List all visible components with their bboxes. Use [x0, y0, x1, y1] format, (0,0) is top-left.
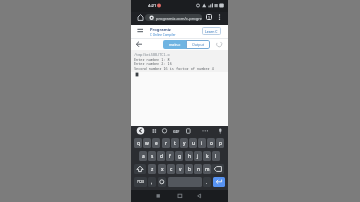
button[interactable] [173, 190, 188, 202]
staticText: Enter number 1: 8 [134, 57, 170, 62]
staticText: programiz.com/c-progra [156, 16, 202, 21]
staticText: . [206, 179, 208, 185]
staticText: x [161, 166, 164, 173]
button[interactable]: e [152, 138, 160, 148]
button[interactable]: Output [186, 40, 210, 49]
button[interactable]: l [212, 151, 220, 161]
staticText: Programiz [150, 27, 171, 33]
button[interactable]: s [148, 151, 156, 161]
staticText: f [169, 153, 171, 160]
button[interactable]: h [185, 151, 193, 161]
staticText: Second number 16 is factor of number 4 [134, 66, 214, 71]
button[interactable]: x [158, 164, 166, 174]
button[interactable]: g [175, 151, 183, 161]
staticText: 4:21 [148, 3, 157, 9]
button[interactable]: y [180, 138, 188, 148]
staticText: w [145, 140, 149, 147]
button[interactable]: r [162, 138, 170, 148]
staticText: /tmp/kei5BBJTCl.o [134, 52, 170, 57]
staticText: a [142, 153, 145, 160]
button[interactable]: i [198, 138, 206, 148]
button[interactable]: Learn C [202, 27, 221, 35]
button[interactable]: f [166, 151, 174, 161]
staticText: y [183, 140, 186, 147]
button[interactable]: . [203, 177, 211, 187]
staticText: GIF [173, 129, 180, 134]
staticText: p [219, 140, 222, 147]
staticText: d [160, 153, 163, 160]
staticText: u [192, 140, 195, 147]
button[interactable] [151, 190, 166, 202]
staticText: z [151, 166, 154, 173]
button[interactable]: c [167, 164, 175, 174]
staticText: Learn C [205, 29, 218, 34]
staticText: c [170, 166, 173, 173]
staticText: 1 [208, 15, 210, 20]
staticText: t [174, 140, 176, 147]
staticText: C Online Compiler [150, 33, 176, 37]
button[interactable]: ?123 [134, 177, 147, 187]
staticText: j [197, 153, 199, 160]
button[interactable]: a [139, 151, 147, 161]
staticText: v [179, 166, 182, 173]
staticText: , [151, 179, 153, 185]
button[interactable]: b [185, 164, 193, 174]
button[interactable]: t [171, 138, 179, 148]
staticText: n [197, 166, 200, 173]
staticText: q [137, 140, 140, 147]
button[interactable] [193, 190, 208, 202]
staticText: s [151, 153, 154, 160]
staticText: g [178, 153, 181, 160]
button[interactable]: v [176, 164, 184, 174]
button[interactable]: z [148, 164, 156, 174]
button[interactable]: p [216, 138, 224, 148]
button[interactable] [213, 177, 225, 187]
button[interactable] [134, 164, 146, 174]
staticText: Enter number 2: 16 [134, 61, 172, 66]
staticText: k [206, 153, 209, 160]
button[interactable]: main.c [163, 40, 187, 49]
button[interactable]: q [134, 138, 142, 148]
staticText: ?123 [137, 180, 144, 184]
button[interactable]: j [194, 151, 202, 161]
button[interactable]: 1 [206, 14, 212, 20]
staticText: b [188, 166, 191, 173]
button[interactable]: k [203, 151, 211, 161]
staticText: i [201, 140, 203, 147]
button[interactable]: programiz.com/c-progra [145, 14, 202, 21]
staticText: main.c [169, 42, 181, 47]
button[interactable]: d [157, 151, 165, 161]
button[interactable]: o [207, 138, 215, 148]
button[interactable] [158, 177, 166, 187]
staticText: r [165, 140, 167, 147]
button[interactable]: w [143, 138, 151, 148]
button[interactable]: n [194, 164, 202, 174]
staticText: l [215, 153, 217, 160]
button[interactable] [211, 164, 224, 174]
button[interactable]: , [148, 177, 156, 187]
button[interactable]: u [189, 138, 197, 148]
staticText: e [155, 140, 158, 147]
staticText: Output [192, 42, 205, 47]
staticText: h [188, 153, 191, 160]
button[interactable]: m [203, 164, 211, 174]
staticText: o [210, 140, 213, 147]
staticText: m [205, 166, 210, 173]
